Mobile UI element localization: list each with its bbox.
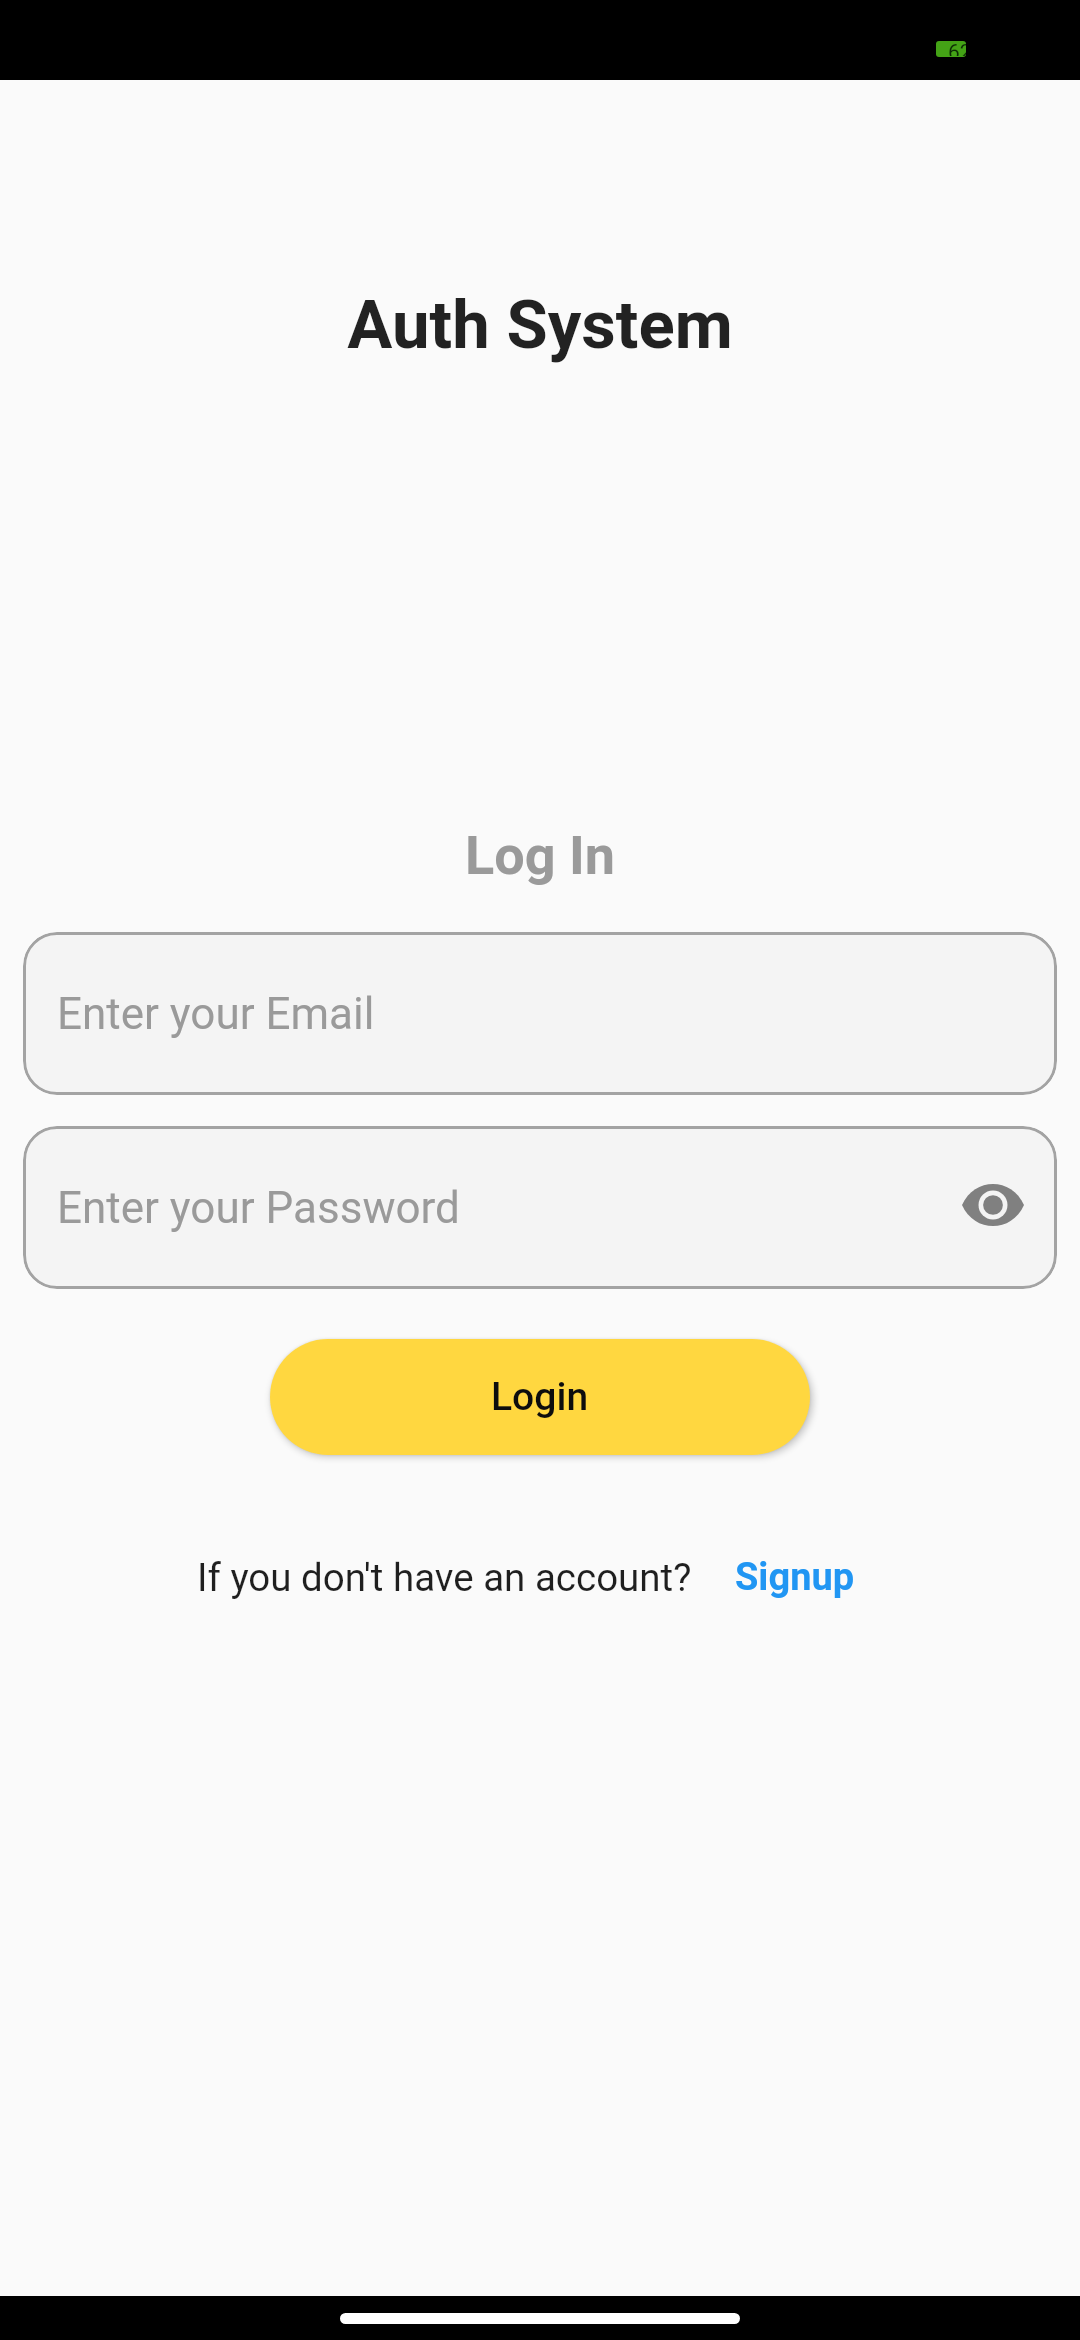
button[interactable]: Enter your Password bbox=[23, 1126, 1057, 1289]
button[interactable]: Login bbox=[270, 1339, 810, 1455]
staticText: 62 bbox=[948, 41, 966, 56]
button[interactable]: Show password bbox=[953, 1165, 1033, 1245]
staticText: Signup bbox=[735, 1555, 855, 1600]
staticText: Enter your Password bbox=[57, 1182, 460, 1234]
staticText: If you don't have an account? bbox=[197, 1555, 692, 1600]
button[interactable]: Signup bbox=[715, 1547, 875, 1608]
staticText: Auth System bbox=[347, 286, 733, 365]
staticText: Login bbox=[491, 1374, 589, 1420]
button[interactable]: Enter your Email bbox=[23, 932, 1057, 1095]
staticText: Log In bbox=[465, 824, 616, 887]
staticText: Enter your Email bbox=[57, 988, 375, 1040]
other: Battery 62 percent bbox=[936, 41, 966, 57]
